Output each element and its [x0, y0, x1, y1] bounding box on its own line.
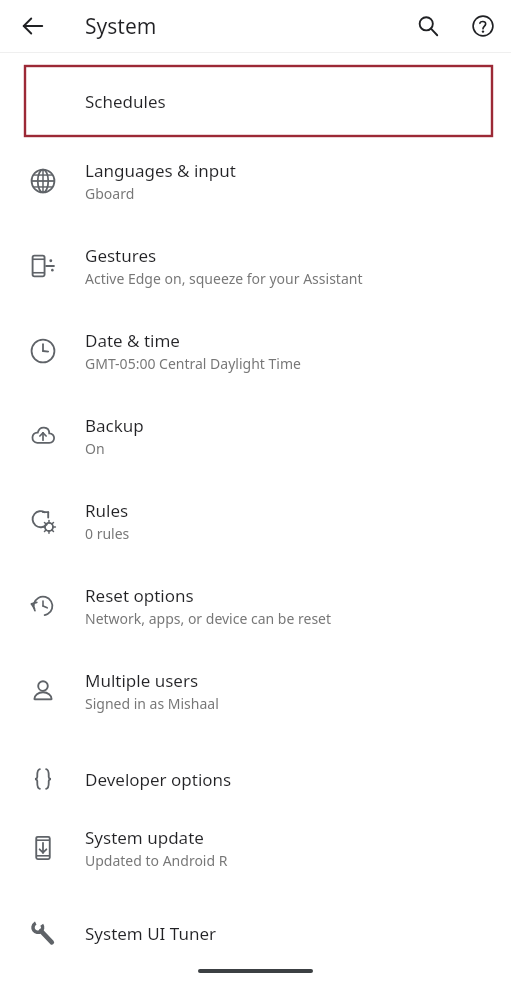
- staticText: Updated to Android R: [85, 851, 228, 870]
- button[interactable]: Back: [12, 5, 54, 47]
- staticText: Backup: [85, 414, 144, 437]
- button[interactable]: Developer options: [0, 749, 511, 809]
- button[interactable]: System UI Tuner: [0, 903, 511, 963]
- staticText: Network, apps, or device can be reset: [85, 609, 332, 628]
- button[interactable]: Rules: [0, 491, 511, 551]
- button[interactable]: Gestures: [0, 236, 511, 296]
- button[interactable]: Help: [462, 5, 504, 47]
- button[interactable]: Backup: [0, 406, 511, 466]
- button[interactable]: Multiple users: [0, 661, 511, 721]
- staticText: System: [85, 12, 157, 41]
- staticText: Signed in as Mishaal: [85, 694, 219, 713]
- staticText: Multiple users: [85, 669, 199, 692]
- staticText: On: [85, 439, 105, 458]
- staticText: GMT-05:00 Central Daylight Time: [85, 354, 301, 373]
- button[interactable]: Reset options: [0, 576, 511, 636]
- staticText: Languages & input: [85, 159, 236, 182]
- button[interactable]: Date & time: [0, 321, 511, 381]
- button[interactable]: Languages & input: [0, 151, 511, 211]
- staticText: Gestures: [85, 244, 157, 267]
- staticText: 0 rules: [85, 524, 130, 543]
- staticText: Active Edge on, squeeze for your Assista…: [85, 269, 363, 288]
- button[interactable]: Search: [407, 5, 449, 47]
- staticText: Gboard: [85, 184, 135, 203]
- staticText: Reset options: [85, 584, 194, 607]
- button[interactable]: System update: [0, 818, 511, 878]
- staticText: Rules: [85, 499, 129, 522]
- staticText: Schedules: [85, 90, 166, 113]
- staticText: System UI Tuner: [85, 922, 217, 945]
- staticText: System update: [85, 826, 204, 849]
- staticText: Developer options: [85, 768, 232, 791]
- staticText: Date & time: [85, 329, 180, 352]
- button[interactable]: Schedules: [25, 66, 492, 136]
